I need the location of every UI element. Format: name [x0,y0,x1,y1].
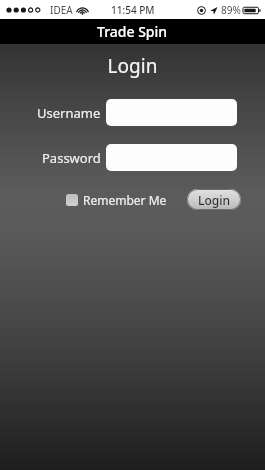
button[interactable]: Password [106,144,237,171]
staticText: Password [42,149,101,167]
staticText: 89% [221,3,241,17]
button[interactable]: Login [187,189,241,210]
staticText: 11:54 PM [111,3,155,17]
staticText: IDEA [50,3,73,17]
staticText: Remember Me [83,192,167,208]
button[interactable]: Username [106,99,237,126]
staticText: Trade Spin [97,22,168,41]
button[interactable]: Remember Me [66,192,167,208]
staticText: Login [0,53,265,79]
staticText: Login [198,192,230,208]
staticText: Username [37,104,101,122]
